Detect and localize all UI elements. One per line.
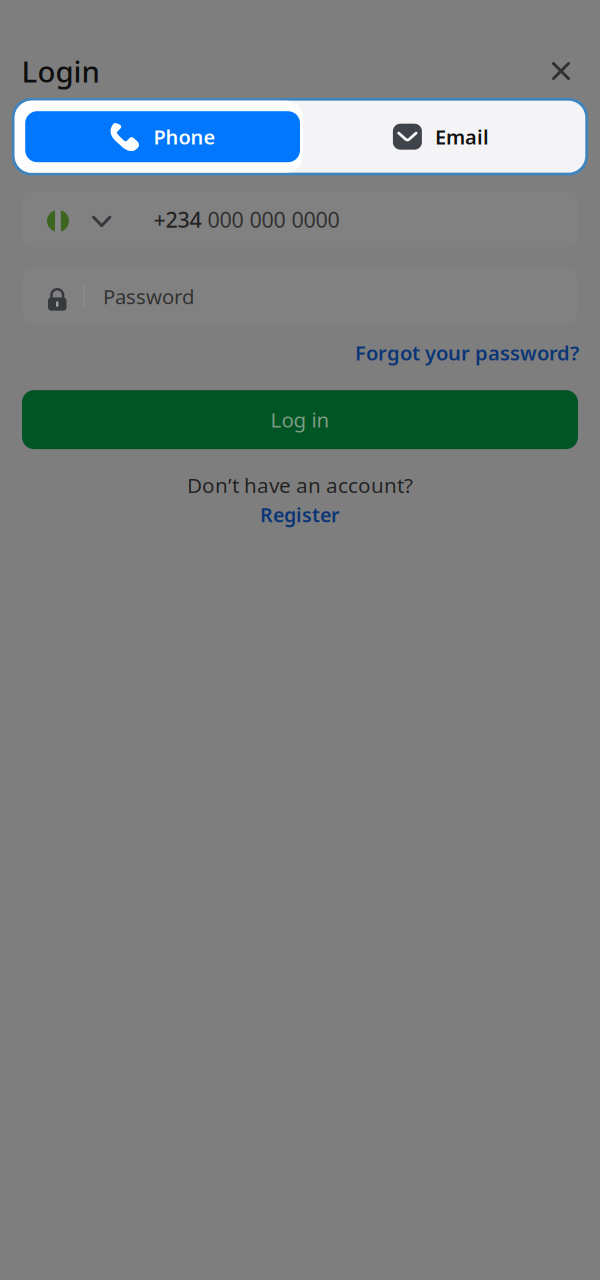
staticText: +234 <box>153 205 201 234</box>
staticText: Email <box>435 123 489 150</box>
button[interactable]: Email <box>300 111 575 162</box>
button[interactable]: Password <box>22 268 578 324</box>
button[interactable]: Register <box>260 502 340 528</box>
staticText: Password <box>103 283 194 310</box>
button[interactable]: Close <box>539 49 583 93</box>
staticText: Phone <box>154 123 216 150</box>
button[interactable]: Log in <box>22 390 578 449</box>
staticText: Forgot your password? <box>355 339 579 366</box>
staticText: 000 000 0000 <box>201 205 339 234</box>
staticText: Don’t have an account? <box>187 471 413 498</box>
staticText: Register <box>260 502 340 528</box>
staticText: Log in <box>270 406 329 433</box>
button[interactable]: +234 <box>22 191 578 247</box>
button[interactable]: Phone <box>25 111 300 162</box>
staticText: Login <box>21 51 99 90</box>
button[interactable]: Forgot your password? <box>355 339 579 366</box>
